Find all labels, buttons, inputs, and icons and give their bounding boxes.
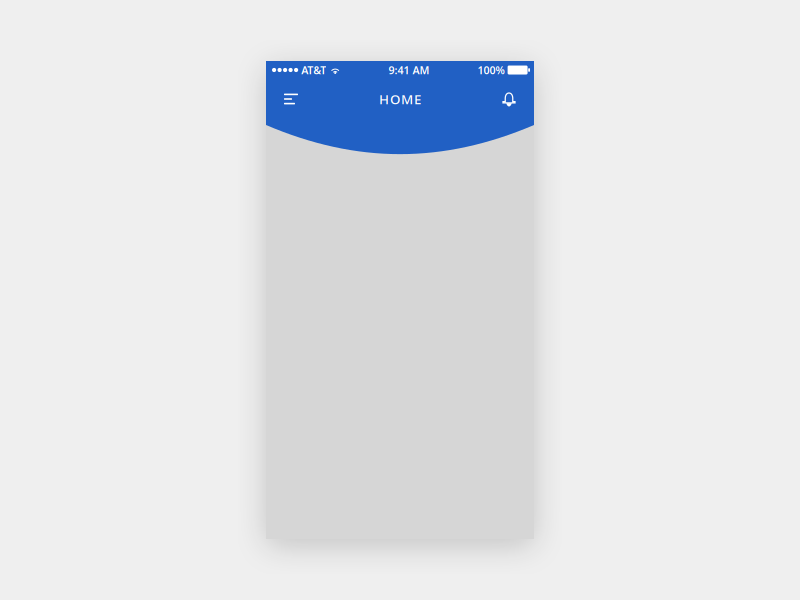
staticText: H O M E — [379, 90, 421, 108]
staticText: 9:41 AM — [388, 63, 429, 77]
staticText: AT&T — [301, 63, 326, 77]
button[interactable]: Menu — [276, 84, 306, 114]
button[interactable]: Notifications — [494, 84, 524, 114]
staticText: 100% — [478, 63, 505, 77]
